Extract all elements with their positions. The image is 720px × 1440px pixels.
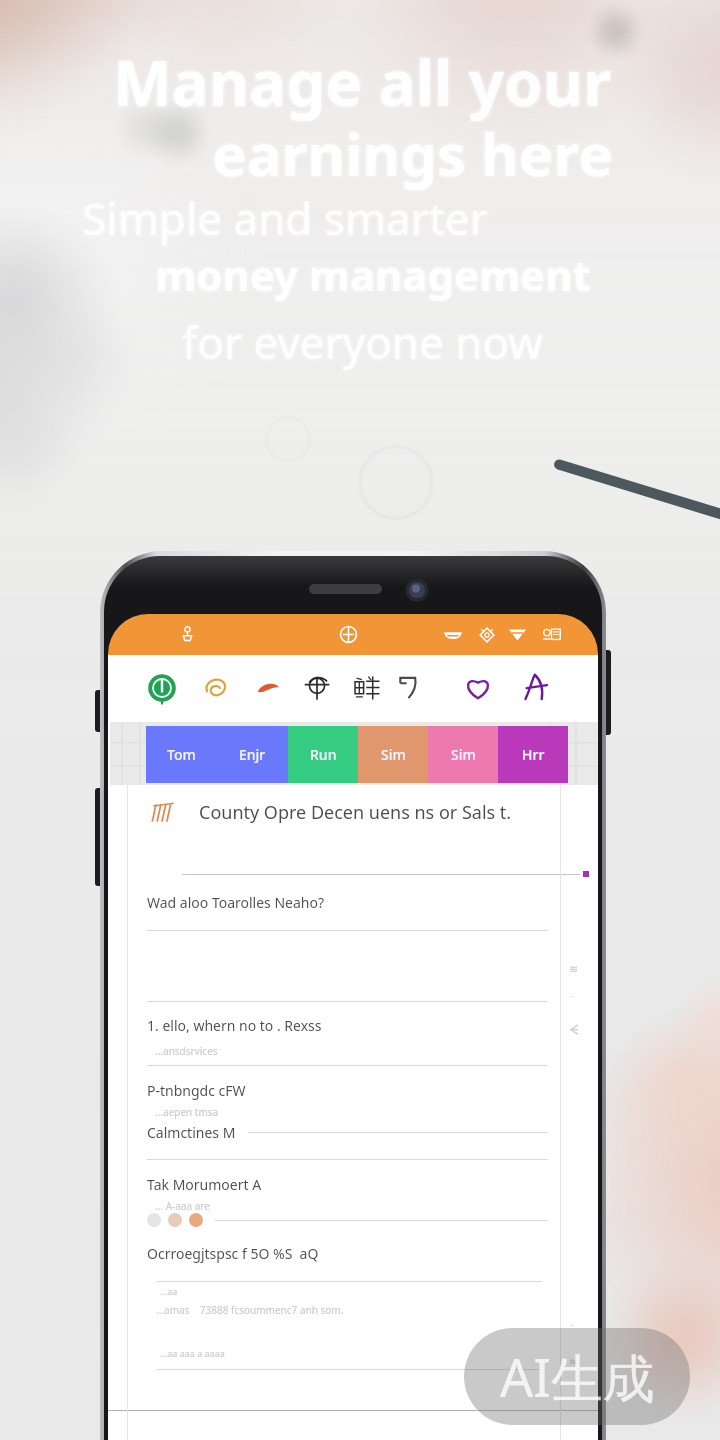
button[interactable]: Sim bbox=[428, 726, 498, 783]
staticText: County Opre Decen uens ns or Sals t. bbox=[199, 800, 512, 825]
button[interactable]: Reports bbox=[344, 655, 390, 720]
staticText: earnings here bbox=[210, 112, 611, 191]
button[interactable]: Wallet bbox=[294, 655, 340, 720]
button[interactable]: Sim bbox=[358, 726, 428, 783]
staticText: money management bbox=[153, 244, 589, 301]
staticText: for everyone now bbox=[184, 310, 545, 370]
staticText: money management bbox=[157, 244, 593, 301]
button[interactable]: Enjr bbox=[217, 726, 288, 783]
button[interactable]: Home bbox=[139, 655, 185, 720]
button[interactable]: Tag bbox=[472, 614, 502, 655]
button[interactable]: History bbox=[385, 655, 431, 720]
staticText: earnings here bbox=[214, 112, 615, 191]
staticText: Manage all your bbox=[115, 38, 613, 122]
staticText: for everyone now bbox=[180, 310, 541, 370]
staticText: money management bbox=[153, 248, 589, 305]
button[interactable]: Hrr bbox=[498, 726, 568, 783]
button[interactable]: More options bbox=[536, 614, 566, 655]
staticText: Simple and smarter bbox=[84, 186, 490, 246]
staticText: Tom bbox=[167, 745, 196, 764]
staticText: · bbox=[571, 990, 574, 1002]
staticText: ≋ bbox=[569, 963, 579, 976]
button[interactable]: Account bbox=[172, 614, 202, 655]
staticText: ...ansdsrvices bbox=[155, 1044, 218, 1058]
staticText: money management bbox=[155, 246, 591, 303]
staticText: for everyone now bbox=[180, 314, 541, 374]
staticText: earnings here bbox=[212, 114, 613, 193]
staticText: earnings here bbox=[214, 116, 615, 195]
staticText: Sim bbox=[381, 745, 406, 764]
staticText: Simple and smarter bbox=[84, 190, 490, 250]
staticText: Enjr bbox=[239, 745, 266, 764]
staticText: for everyone now bbox=[184, 314, 545, 374]
button[interactable]: Profile bbox=[513, 655, 559, 720]
staticText: Wad aloo Toarolles Neaho? bbox=[147, 893, 325, 912]
staticText: ...aa bbox=[160, 1285, 178, 1297]
button[interactable]: Favorites bbox=[245, 655, 291, 720]
staticText: P-tnbngdc cFW bbox=[147, 1081, 246, 1100]
staticText: for everyone now bbox=[182, 312, 543, 372]
staticText: Manage all your bbox=[111, 38, 609, 122]
staticText: ≋ bbox=[569, 1357, 577, 1367]
staticText: · bbox=[571, 1319, 574, 1331]
staticText: Manage all your bbox=[115, 42, 613, 126]
button[interactable]: Add bbox=[333, 614, 363, 655]
staticText: Calmctines M bbox=[147, 1123, 236, 1142]
staticText: Manage all your bbox=[111, 42, 609, 126]
staticText: Simple and smarter bbox=[80, 190, 486, 250]
staticText: money management bbox=[157, 248, 593, 305]
button[interactable]: Notifications bbox=[438, 614, 468, 655]
staticText: 1. ello, whern no to . Rexss bbox=[147, 1016, 322, 1035]
staticText: ...aa aaa a aaaa bbox=[160, 1347, 225, 1359]
staticText: Hrr bbox=[522, 745, 545, 764]
staticText: ᗕ bbox=[569, 1025, 579, 1038]
button[interactable]: Explore bbox=[193, 655, 239, 720]
button[interactable]: Filter bbox=[502, 614, 532, 655]
staticText: ...aepen tmsa bbox=[155, 1105, 219, 1119]
staticText: earnings here bbox=[210, 116, 611, 195]
button[interactable]: County Opre Decen uens ns or Sals t. bbox=[149, 792, 598, 832]
button[interactable]: Saved bbox=[455, 655, 501, 720]
staticText: ... A-aaa are bbox=[155, 1199, 210, 1213]
staticText: Sim bbox=[451, 745, 476, 764]
button[interactable]: Tom bbox=[146, 726, 217, 783]
staticText: Simple and smarter bbox=[82, 188, 488, 248]
staticText: Tak Morumoert A bbox=[147, 1175, 262, 1194]
staticText: Simple and smarter bbox=[80, 186, 486, 246]
staticText: AI生成 bbox=[500, 1341, 655, 1412]
staticText: Run bbox=[310, 745, 337, 764]
button[interactable]: Run bbox=[288, 726, 358, 783]
staticText: Manage all your bbox=[113, 40, 611, 124]
staticText: ...amas 73888 fcsoummenc7 anh som. bbox=[156, 1303, 344, 1317]
staticText: Ocrroegjtspsc f 5O %S aQ bbox=[147, 1244, 319, 1263]
